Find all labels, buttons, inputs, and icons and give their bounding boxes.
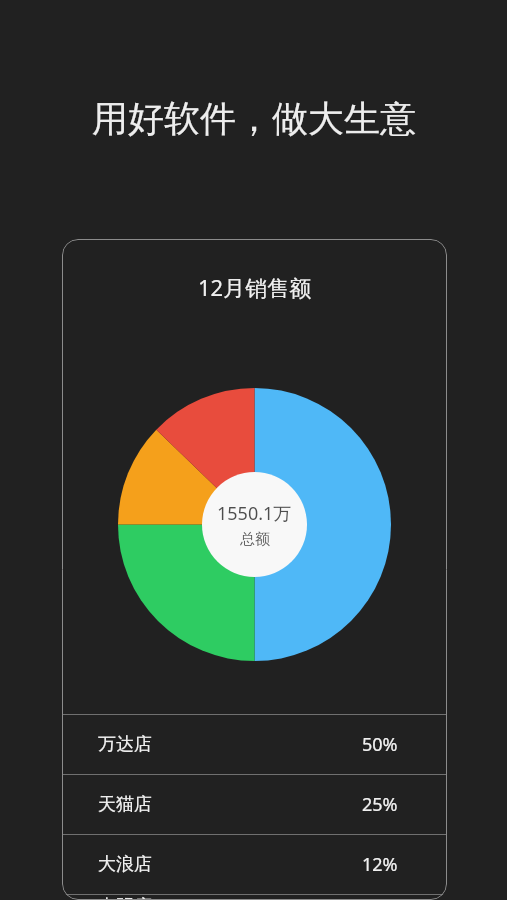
button[interactable]: 光明店 bbox=[62, 895, 447, 900]
staticText: 万达店 bbox=[98, 733, 152, 756]
staticText: 用好软件，做大生意 bbox=[92, 96, 416, 141]
button[interactable]: 天猫店 bbox=[62, 775, 447, 834]
staticText: 天猫店 bbox=[98, 793, 152, 816]
staticText: 光明店 bbox=[98, 895, 152, 900]
staticText: 1550.1万 bbox=[217, 501, 292, 526]
button[interactable]: 12月销售额 bbox=[62, 239, 447, 900]
staticText: 8% bbox=[362, 895, 388, 900]
staticText: 50% bbox=[362, 732, 398, 757]
button[interactable]: 大浪店 bbox=[62, 835, 447, 894]
button[interactable]: 万达店 bbox=[62, 715, 447, 774]
staticText: 12月销售额 bbox=[198, 272, 312, 302]
staticText: 12% bbox=[362, 852, 398, 877]
staticText: 总额 bbox=[240, 530, 270, 549]
staticText: 25% bbox=[362, 792, 398, 817]
staticText: 大浪店 bbox=[98, 853, 152, 876]
